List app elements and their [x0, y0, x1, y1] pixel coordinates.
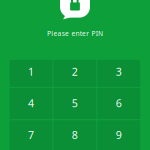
- button[interactable]: 5: [53, 88, 96, 119]
- button[interactable]: 6: [97, 88, 140, 119]
- button[interactable]: 3: [97, 60, 140, 87]
- staticText: 1: [28, 64, 34, 79]
- button[interactable]: 2: [53, 60, 96, 87]
- button[interactable]: 1: [9, 60, 52, 87]
- staticText: 8: [72, 128, 78, 142]
- button[interactable]: 8: [53, 120, 96, 150]
- staticText: 3: [116, 64, 122, 79]
- button[interactable]: 7: [9, 120, 52, 150]
- staticText: 6: [116, 96, 122, 110]
- button[interactable]: 4: [9, 88, 52, 119]
- button[interactable]: 9: [97, 120, 140, 150]
- staticText: 5: [72, 96, 78, 110]
- staticText: 4: [28, 96, 34, 110]
- staticText: 2: [72, 64, 78, 79]
- staticText: 7: [28, 128, 34, 142]
- staticText: Please enter PIN: [47, 29, 103, 38]
- staticText: 9: [116, 128, 122, 142]
